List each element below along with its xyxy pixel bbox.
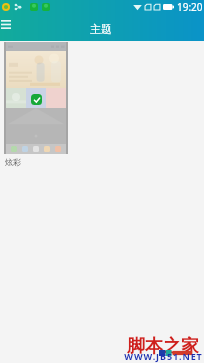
button[interactable]: Menu xyxy=(0,15,15,33)
staticText: 炫彩 xyxy=(5,157,21,167)
staticText: WWW.JB51.NET xyxy=(124,350,203,362)
staticText: 19:20 xyxy=(177,0,203,14)
staticText: 主题 xyxy=(90,22,112,36)
staticText: 脚本之家 xyxy=(127,335,199,358)
button[interactable] xyxy=(4,42,68,154)
